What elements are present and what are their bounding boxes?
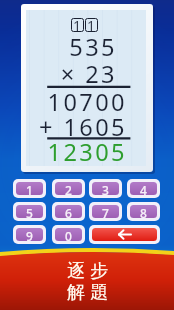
button[interactable]: 0 <box>55 228 82 241</box>
staticText: 1 <box>73 16 82 35</box>
staticText: 逐步 <box>67 260 114 283</box>
button[interactable]: 1 <box>16 182 43 195</box>
staticText: 3 <box>102 182 109 195</box>
staticText: + 1605 <box>38 111 127 143</box>
button[interactable]: 6 <box>55 205 82 218</box>
staticText: 6 <box>65 205 72 218</box>
staticText: 1 <box>26 182 33 195</box>
button[interactable]: Backspace <box>92 228 157 241</box>
staticText: 解題 <box>67 281 114 304</box>
staticText: × 23 <box>60 58 117 90</box>
button[interactable]: 3 <box>92 182 119 195</box>
button[interactable]: 4 <box>130 182 157 195</box>
staticText: 7 <box>102 205 109 218</box>
staticText: 2 <box>65 182 72 195</box>
staticText: 535 <box>69 31 117 63</box>
staticText: 9 <box>26 228 33 241</box>
staticText: 0 <box>65 228 72 241</box>
staticText: 4 <box>140 182 147 195</box>
button[interactable]: 7 <box>92 205 119 218</box>
button[interactable]: 2 <box>55 182 82 195</box>
staticText: 12305 <box>47 136 127 168</box>
staticText: 1 <box>87 16 96 35</box>
staticText: 10700 <box>47 86 127 118</box>
staticText: 8 <box>140 205 147 218</box>
staticText: 5 <box>26 205 33 218</box>
button[interactable]: 8 <box>130 205 157 218</box>
button[interactable]: 9 <box>16 228 43 241</box>
button[interactable]: 5 <box>16 205 43 218</box>
